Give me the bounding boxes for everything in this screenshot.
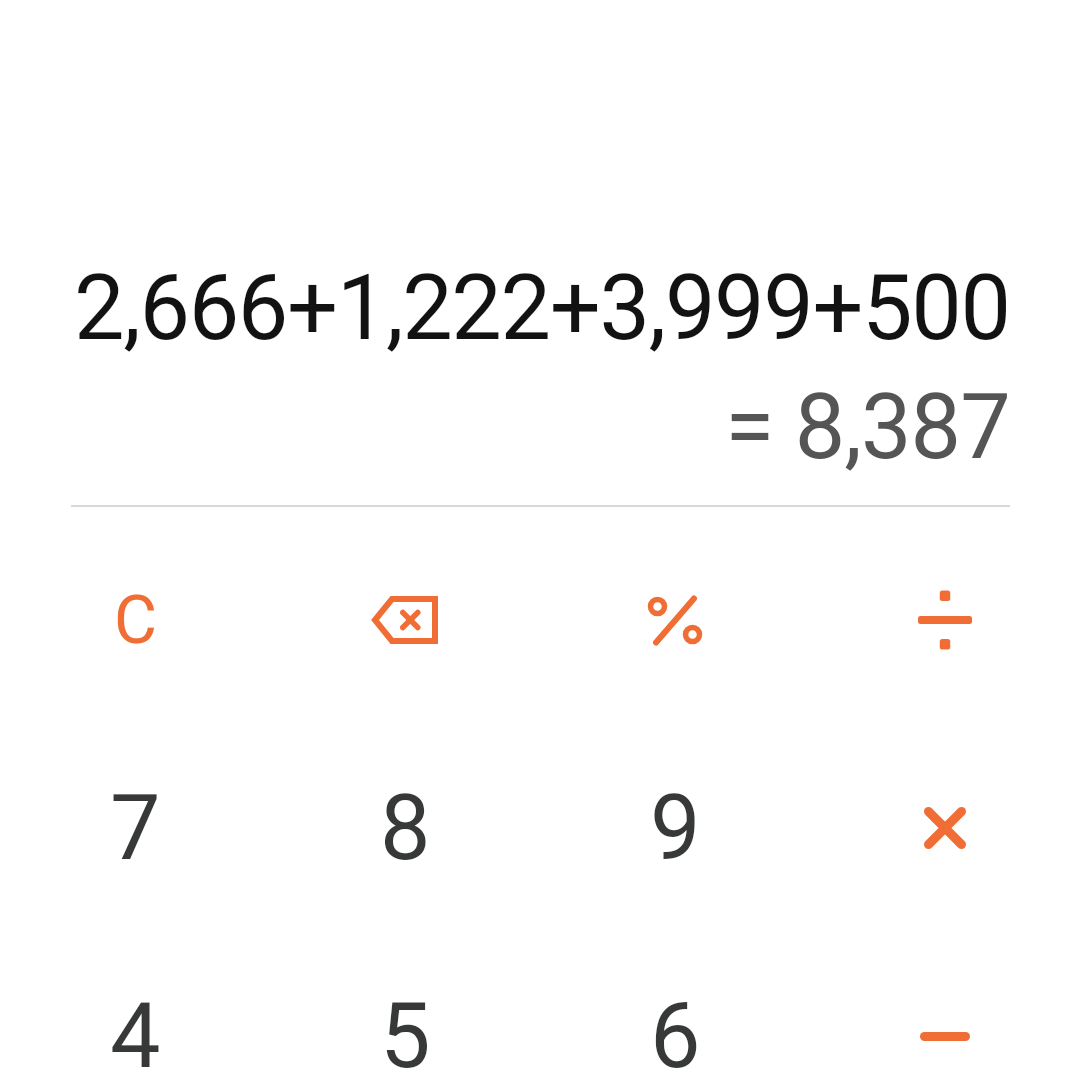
staticText: 6: [650, 984, 701, 1080]
staticText: 7: [110, 776, 161, 881]
button[interactable]: 6: [540, 932, 810, 1080]
staticText: 4: [110, 984, 161, 1080]
button[interactable]: [810, 516, 1080, 724]
button[interactable]: 4: [0, 932, 270, 1080]
button[interactable]: [810, 932, 1080, 1080]
staticText: = 8,387: [725, 375, 1010, 480]
button[interactable]: 8: [270, 724, 540, 932]
staticText: 9: [650, 776, 701, 881]
button[interactable]: [270, 516, 540, 724]
button[interactable]: 5: [270, 932, 540, 1080]
button[interactable]: [810, 724, 1080, 932]
staticText: 8: [380, 776, 431, 881]
staticText: C: [114, 582, 157, 659]
button[interactable]: [540, 516, 810, 724]
staticText: 2,666+1,222+3,999+500: [74, 256, 1010, 361]
button[interactable]: 9: [540, 724, 810, 932]
staticText: 5: [380, 984, 431, 1080]
button[interactable]: C: [0, 516, 270, 724]
button[interactable]: 7: [0, 724, 270, 932]
